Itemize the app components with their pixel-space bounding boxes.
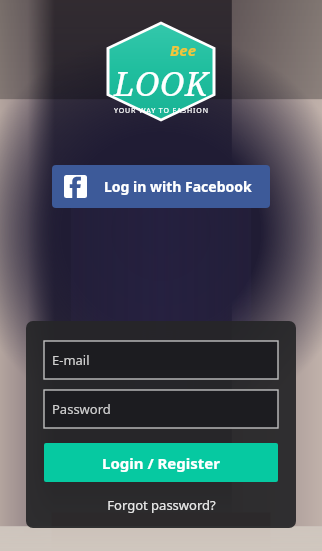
staticText: LOOK [114, 61, 209, 106]
button[interactable]: Forgot password? [44, 482, 278, 528]
staticText: Log in with Facebook [104, 177, 252, 196]
staticText: E-mail [52, 351, 90, 369]
staticText: YOUR WAY TO FASHION [114, 106, 209, 116]
staticText: Password [52, 400, 111, 418]
staticText: Bee [170, 40, 197, 60]
button[interactable]: E-mail [44, 341, 278, 379]
staticText: Forgot password? [107, 496, 216, 514]
button[interactable]: Login / Register [44, 443, 278, 482]
button[interactable]: Password [44, 390, 278, 428]
button[interactable]: Log in with Facebook [52, 165, 270, 208]
staticText: Login / Register [102, 453, 220, 473]
